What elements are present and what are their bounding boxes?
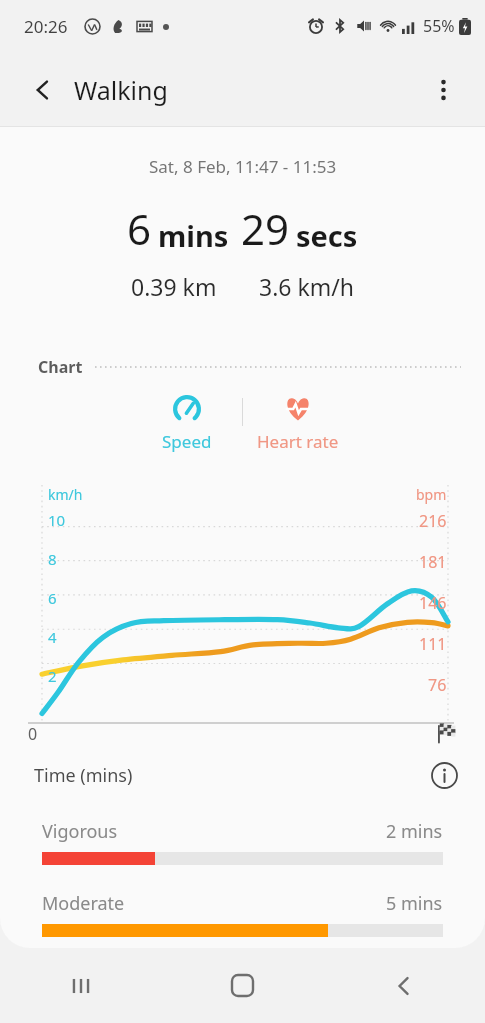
staticText: 146 — [419, 592, 447, 614]
button[interactable]: Moderate — [0, 891, 485, 937]
staticText: 6 — [48, 588, 57, 608]
staticText: 216 — [419, 510, 447, 532]
staticText: 20:26 — [24, 15, 68, 38]
button[interactable]: Recent apps — [0, 948, 161, 1023]
staticText: mins — [158, 216, 229, 255]
staticText: 76 — [428, 674, 447, 696]
button[interactable]: Home — [161, 948, 323, 1023]
staticText: Walking — [74, 73, 168, 107]
staticText: 3.6 km/h — [259, 271, 355, 302]
button[interactable]: Heart rate — [243, 394, 353, 453]
staticText: secs — [296, 216, 358, 255]
staticText: bpm — [416, 485, 447, 504]
button[interactable]: More options — [421, 68, 465, 112]
staticText: Vigorous — [42, 819, 118, 844]
staticText: 8 — [48, 549, 57, 569]
staticText: 2 — [48, 666, 57, 686]
staticText: 181 — [419, 551, 447, 573]
button[interactable]: Vigorous — [0, 819, 485, 865]
staticText: Moderate — [42, 891, 125, 916]
staticText: Sat, 8 Feb, 11:47 - 11:53 — [149, 155, 337, 178]
staticText: Heart rate — [257, 430, 339, 453]
other: Finish — [433, 719, 459, 745]
button[interactable]: Speed — [132, 394, 242, 453]
button[interactable]: Back — [323, 948, 485, 1023]
staticText: 0.39 km — [131, 271, 217, 302]
button[interactable]: Information — [425, 756, 463, 794]
staticText: 55% — [423, 15, 455, 37]
staticText: 6 — [127, 200, 152, 257]
staticText: 29 — [241, 200, 290, 257]
staticText: 2 mins — [386, 819, 443, 844]
staticText: 10 — [48, 510, 66, 530]
staticText: 5 mins — [386, 891, 443, 916]
staticText: 111 — [419, 633, 447, 655]
staticText: Speed — [162, 430, 212, 453]
staticText: 0 — [28, 723, 38, 745]
staticText: Chart — [38, 356, 83, 378]
staticText: 4 — [48, 627, 57, 647]
button[interactable]: Back — [20, 67, 66, 113]
staticText: km/h — [48, 485, 83, 504]
staticText: Time (mins) — [34, 763, 133, 788]
